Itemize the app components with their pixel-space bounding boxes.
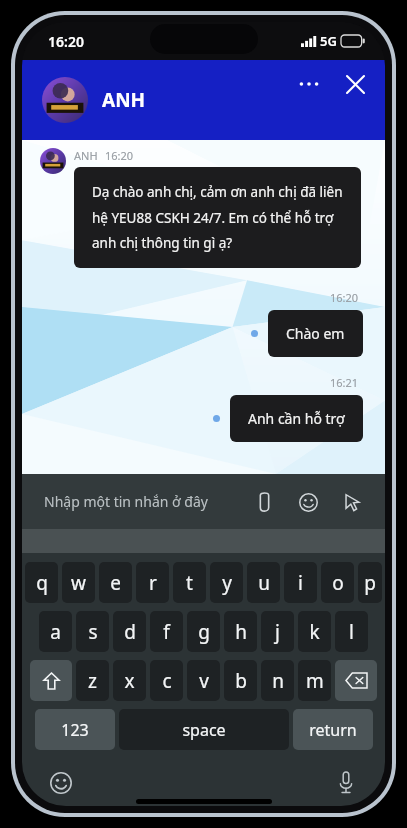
button[interactable]: o — [321, 562, 354, 603]
staticText: return — [309, 719, 357, 741]
staticText: p — [364, 570, 376, 596]
button[interactable]: Emoji keyboard — [44, 766, 78, 800]
staticText: 123 — [61, 719, 89, 741]
staticText: g — [198, 619, 210, 645]
button[interactable]: Send — [335, 485, 369, 519]
button[interactable]: u — [247, 562, 280, 603]
staticText: space — [182, 719, 226, 741]
staticText: i — [298, 570, 303, 596]
staticText: m — [306, 668, 324, 694]
button[interactable]: s — [76, 611, 109, 652]
button[interactable]: v — [187, 660, 220, 701]
staticText: q — [36, 570, 48, 596]
button[interactable]: Dạ chào anh chị, cảm ơn anh chị đã liên … — [74, 167, 361, 268]
staticText: Chào em — [286, 324, 345, 343]
staticText: o — [332, 570, 344, 596]
staticText: Anh cần hỗ trợ — [248, 409, 345, 428]
staticText: 16:20 — [105, 148, 134, 163]
staticText: v — [199, 668, 209, 694]
staticText: 16:21 — [330, 375, 359, 390]
button[interactable]: Shift — [30, 660, 72, 701]
button[interactable]: return — [293, 709, 373, 750]
button[interactable]: Close — [337, 66, 373, 102]
button[interactable]: x — [113, 660, 146, 701]
staticText: l — [349, 619, 354, 645]
button[interactable]: y — [210, 562, 243, 603]
staticText: 16:20 — [330, 290, 359, 305]
button[interactable]: Attach file — [247, 485, 281, 519]
staticText: ANH — [102, 87, 146, 113]
button[interactable]: More options — [291, 66, 327, 102]
button[interactable]: e — [99, 562, 132, 603]
button[interactable]: Voice input — [329, 766, 363, 800]
staticText: e — [110, 570, 121, 596]
button[interactable]: Emoji — [291, 485, 325, 519]
button[interactable]: z — [76, 660, 109, 701]
button[interactable]: f — [150, 611, 183, 652]
button[interactable]: h — [224, 611, 257, 652]
staticText: u — [258, 570, 270, 596]
staticText: w — [71, 570, 86, 596]
button[interactable]: b — [224, 660, 257, 701]
button[interactable]: Anh cần hỗ trợ — [230, 395, 363, 442]
staticText: k — [309, 619, 320, 645]
button[interactable]: Nhập một tin nhắn ở đây — [44, 492, 208, 511]
button[interactable]: q — [25, 562, 58, 603]
button[interactable]: space — [119, 709, 289, 750]
staticText: x — [124, 668, 135, 694]
staticText: z — [88, 668, 97, 694]
button[interactable]: n — [261, 660, 294, 701]
button[interactable]: i — [284, 562, 317, 603]
staticText: t — [186, 570, 193, 596]
button[interactable]: Backspace — [335, 660, 377, 701]
staticText: d — [124, 619, 136, 645]
button[interactable]: d — [113, 611, 146, 652]
staticText: 16:20 — [48, 32, 84, 51]
staticText: j — [275, 619, 280, 645]
staticText: ANH — [74, 148, 98, 163]
button[interactable]: a — [39, 611, 72, 652]
staticText: y — [222, 570, 232, 596]
button[interactable]: 123 — [35, 709, 115, 750]
staticText: r — [149, 570, 157, 596]
button[interactable]: ANH — [42, 77, 146, 123]
button[interactable]: Chào em — [268, 310, 363, 357]
button[interactable]: j — [261, 611, 294, 652]
staticText: b — [235, 668, 247, 694]
staticText: s — [88, 619, 98, 645]
button[interactable]: k — [298, 611, 331, 652]
button[interactable]: l — [335, 611, 368, 652]
button[interactable]: p — [358, 562, 382, 603]
staticText: n — [272, 668, 284, 694]
button[interactable]: m — [298, 660, 331, 701]
staticText: h — [235, 619, 247, 645]
staticText: a — [50, 619, 61, 645]
staticText: f — [163, 619, 170, 645]
button[interactable]: r — [136, 562, 169, 603]
button[interactable]: t — [173, 562, 206, 603]
button[interactable]: g — [187, 611, 220, 652]
button[interactable]: c — [150, 660, 183, 701]
staticText: Dạ chào anh chị, cảm ơn anh chị đã liên … — [92, 183, 343, 252]
staticText: 5G — [320, 32, 337, 50]
staticText: c — [162, 668, 172, 694]
button[interactable]: w — [62, 562, 95, 603]
